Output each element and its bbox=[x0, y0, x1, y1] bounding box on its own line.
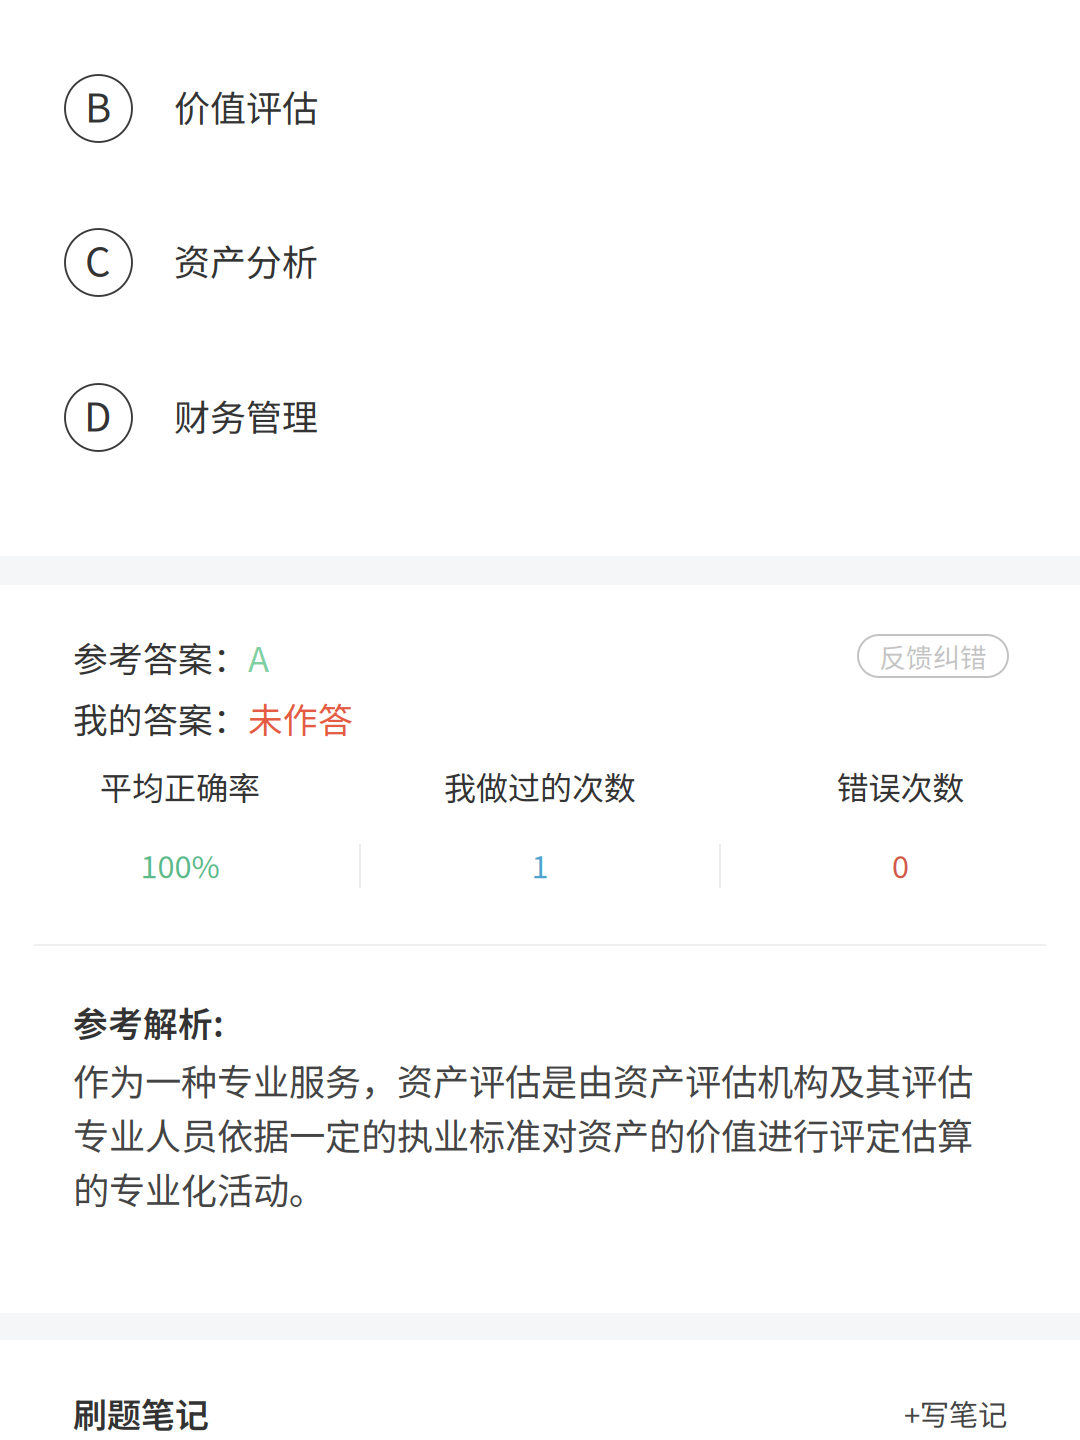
staticText: 参考解析: bbox=[73, 997, 224, 1047]
button[interactable]: D 财务管理 bbox=[0, 340, 1080, 494]
staticText: 资产分析 bbox=[174, 234, 318, 286]
button[interactable]: 反馈纠错 bbox=[858, 635, 1008, 677]
staticText: 未作答 bbox=[248, 693, 353, 743]
staticText: D bbox=[84, 385, 112, 443]
staticText: B bbox=[85, 76, 111, 134]
staticText: 1 bbox=[531, 843, 548, 887]
staticText: 平均正确率 bbox=[100, 763, 260, 809]
staticText: 刷题笔记 bbox=[73, 1388, 209, 1438]
button[interactable]: C 资产分析 bbox=[0, 185, 1080, 339]
staticText: A bbox=[248, 632, 269, 682]
staticText: 100% bbox=[140, 843, 219, 887]
staticText: 我做过的次数 bbox=[444, 763, 636, 809]
staticText: 错误次数 bbox=[836, 763, 964, 809]
staticText: +写笔记 bbox=[904, 1392, 1007, 1434]
button[interactable]: +写笔记 bbox=[847, 1382, 1007, 1440]
staticText: C bbox=[85, 230, 111, 288]
staticText: 财务管理 bbox=[174, 389, 318, 441]
staticText: 0 bbox=[892, 843, 909, 887]
button[interactable]: B 价值评估 bbox=[0, 31, 1080, 185]
staticText: 作为一种专业服务，资产评估是由资产评估机构及其评估专业人员依据一定的执业标准对资… bbox=[73, 1053, 973, 1214]
staticText: 反馈纠错 bbox=[879, 637, 987, 675]
staticText: 参考答案： bbox=[73, 632, 248, 682]
staticText: 我的答案： bbox=[73, 693, 248, 743]
staticText: 价值评估 bbox=[174, 80, 318, 132]
